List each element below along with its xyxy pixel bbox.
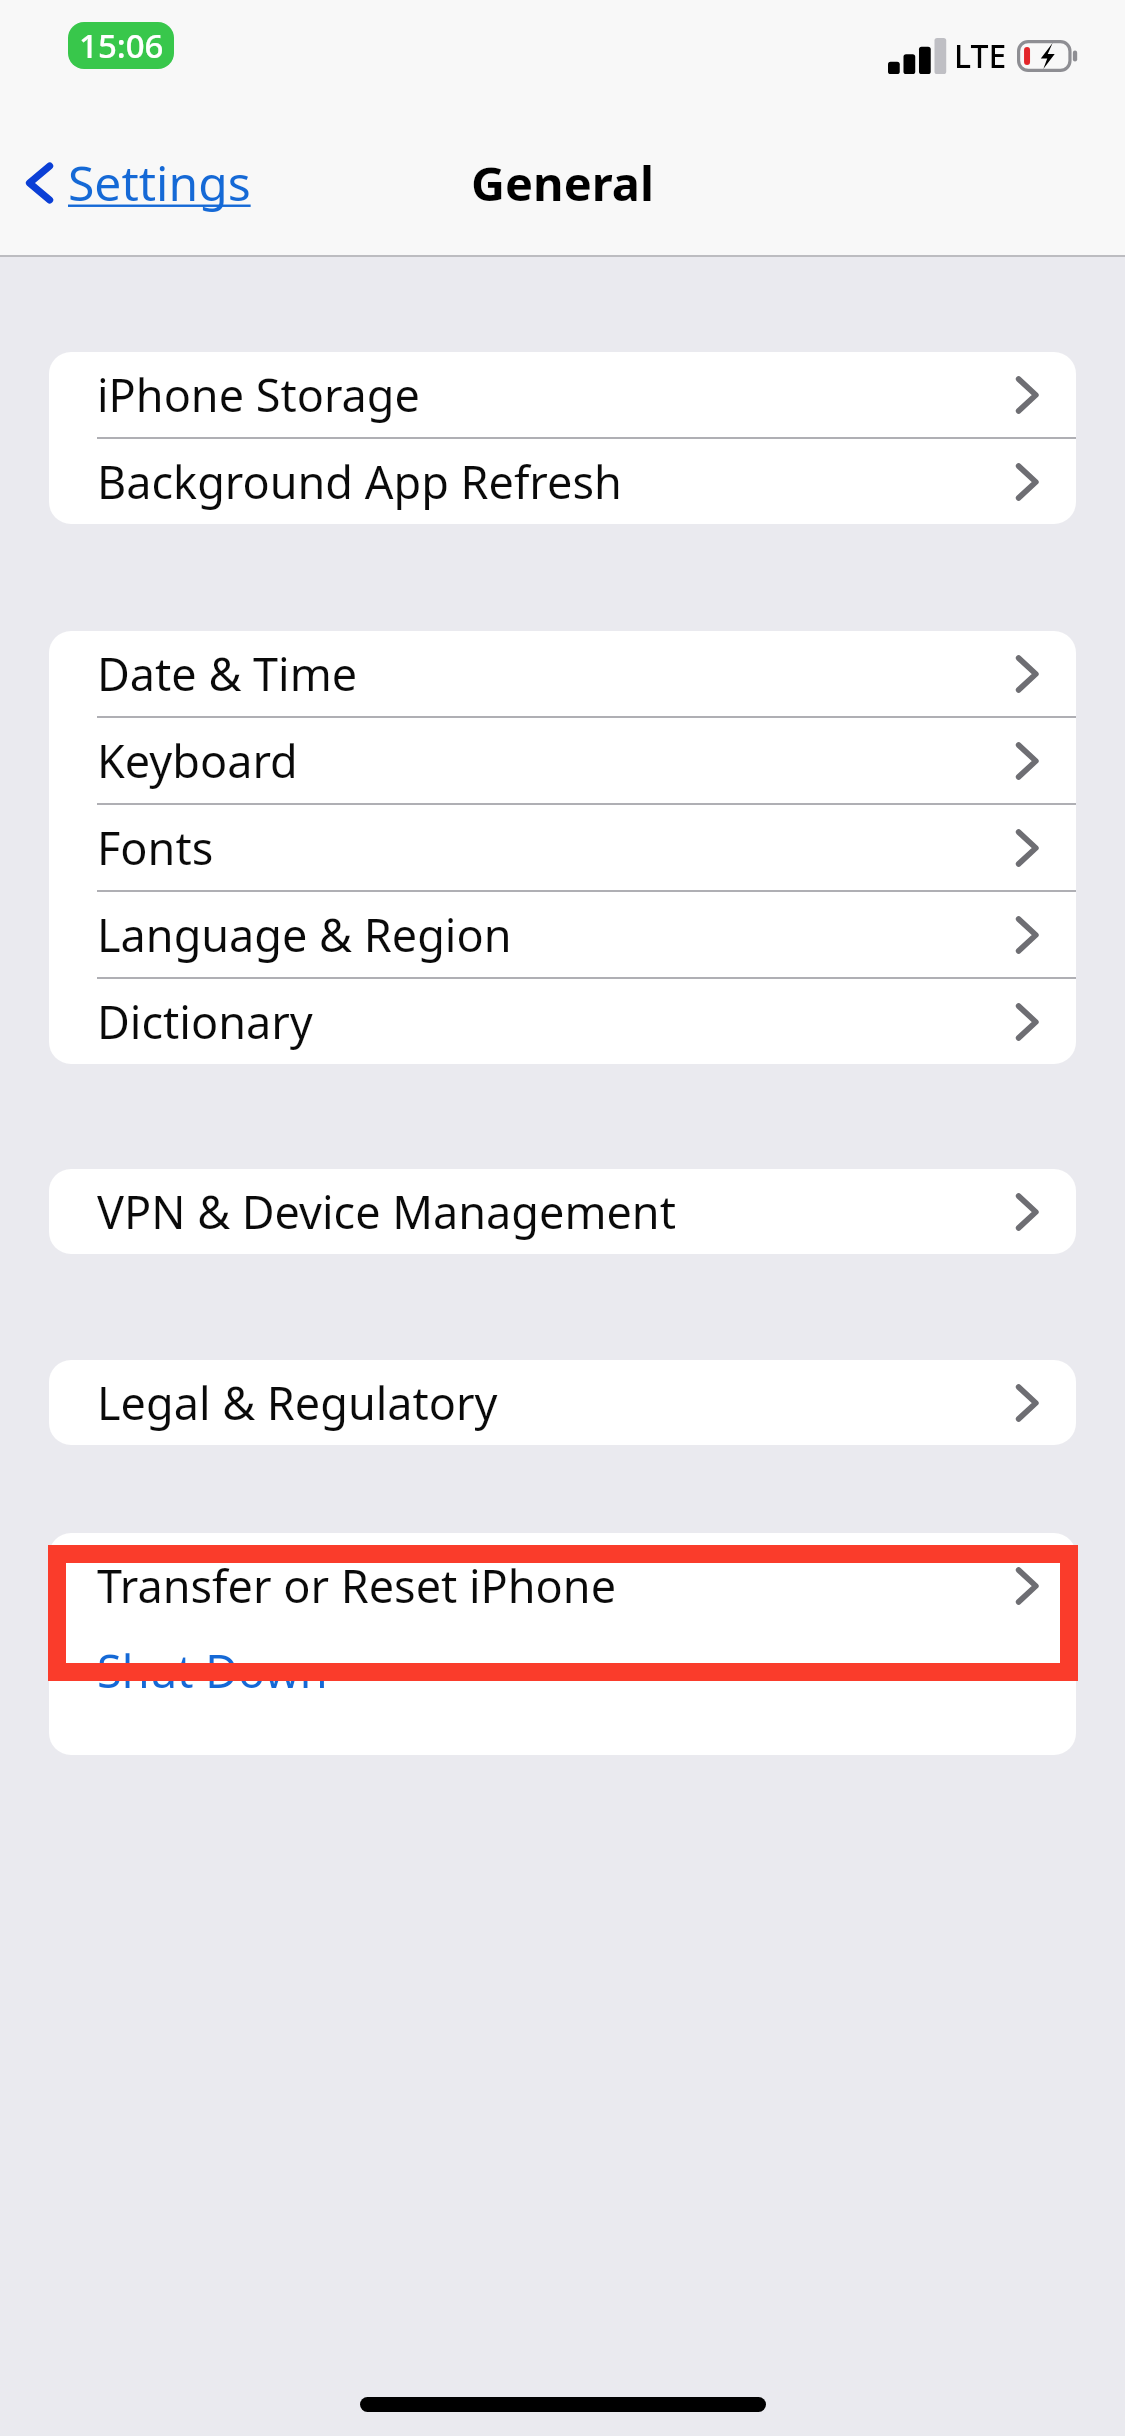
- staticText: LTE: [954, 34, 1007, 78]
- staticText: Shut Down: [97, 1640, 328, 1701]
- staticText: Language & Region: [97, 904, 512, 965]
- button[interactable]: Keyboard: [49, 718, 1076, 803]
- button[interactable]: Shut Down: [49, 1628, 1076, 1713]
- staticText: Keyboard: [97, 730, 298, 791]
- staticText: General: [471, 151, 654, 215]
- button[interactable]: VPN & Device Management: [49, 1169, 1076, 1254]
- other: Back: [18, 158, 62, 208]
- staticText: 15:06: [79, 23, 164, 68]
- button[interactable]: Back: [18, 150, 251, 215]
- button[interactable]: Background App Refresh: [49, 439, 1076, 524]
- staticText: Dictionary: [97, 991, 313, 1052]
- staticText: Background App Refresh: [97, 451, 622, 512]
- staticText: Fonts: [97, 817, 214, 878]
- staticText: iPhone Storage: [97, 364, 420, 425]
- button[interactable]: Date & Time: [49, 631, 1076, 716]
- button[interactable]: Fonts: [49, 805, 1076, 890]
- button[interactable]: Language & Region: [49, 892, 1076, 977]
- button[interactable]: Legal & Regulatory: [49, 1360, 1076, 1445]
- staticText: Settings: [68, 150, 251, 215]
- staticText: VPN & Device Management: [97, 1181, 676, 1242]
- button[interactable]: Dictionary: [49, 979, 1076, 1064]
- staticText: Transfer or Reset iPhone: [97, 1555, 617, 1616]
- staticText: Legal & Regulatory: [97, 1372, 498, 1433]
- button[interactable]: iPhone Storage: [49, 352, 1076, 437]
- button[interactable]: Transfer or Reset iPhone: [49, 1543, 1076, 1628]
- staticText: Date & Time: [97, 643, 358, 704]
